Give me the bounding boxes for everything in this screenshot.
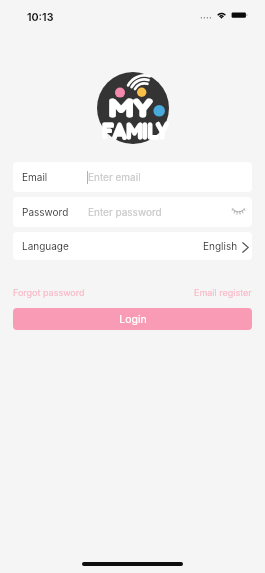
button[interactable]: Password <box>13 197 252 227</box>
staticText: Enter password <box>88 206 162 218</box>
staticText: Enter email <box>88 171 141 183</box>
staticText: 10:13 <box>27 11 54 24</box>
button[interactable]: Forgot password <box>13 287 85 298</box>
button[interactable]: Login <box>13 308 252 330</box>
button[interactable]: Show password <box>227 197 249 221</box>
button[interactable]: Email <box>13 162 252 192</box>
staticText: English <box>203 240 238 252</box>
staticText: FAMILY <box>102 116 169 144</box>
button[interactable]: Language <box>13 232 252 260</box>
staticText: MY <box>109 92 153 124</box>
staticText: Email <box>22 171 48 183</box>
staticText: Password <box>22 206 69 218</box>
staticText: Language <box>22 240 69 252</box>
staticText: Login <box>119 313 147 326</box>
button[interactable]: Email register <box>194 287 252 298</box>
